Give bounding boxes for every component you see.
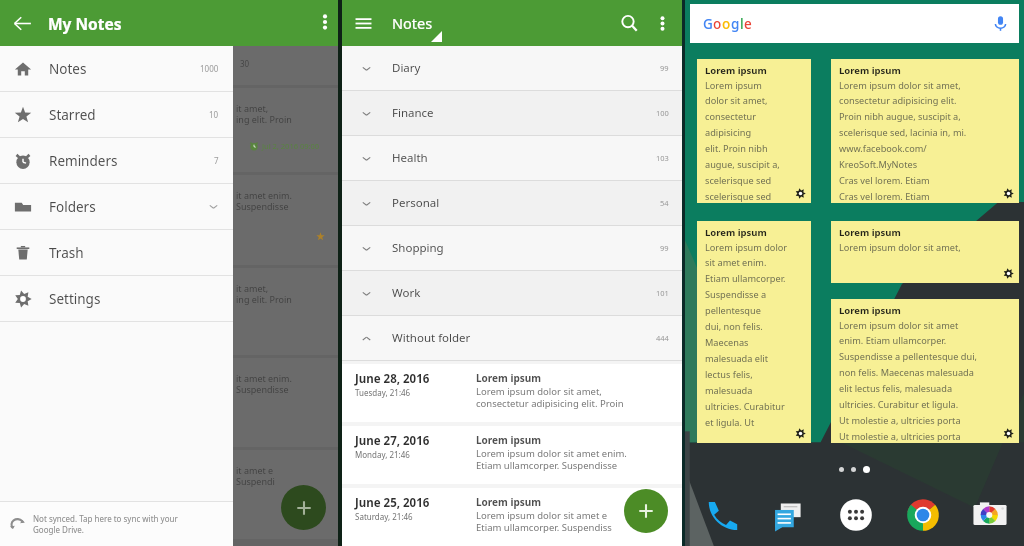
staticText: it amet, ing elit. Proin [236, 282, 292, 306]
staticText: Health [392, 150, 428, 166]
staticText: G [703, 15, 713, 33]
button[interactable]: Note options [795, 428, 806, 439]
staticText: Folders [49, 198, 96, 216]
staticText: Trash [49, 244, 84, 262]
staticText: 103 [656, 153, 669, 163]
staticText: Settings [49, 290, 101, 308]
staticText: June 25, 2016 [355, 495, 430, 511]
button[interactable]: Not synced. Tap here to sync with your G… [0, 502, 233, 546]
staticText: Lorem ipsum [839, 64, 901, 77]
staticText: l [740, 15, 744, 33]
staticText: 101 [656, 288, 669, 298]
staticText: Starred [49, 106, 96, 124]
button[interactable]: Lorem ipsum [831, 299, 1019, 443]
staticText: Lorem ipsum [476, 433, 542, 447]
staticText: Monday, 21:46 [355, 449, 410, 460]
staticText: 100 [656, 108, 669, 118]
button[interactable]: Notes [0, 46, 233, 91]
staticText: Lorem ipsum dolor sit amet, [839, 241, 961, 254]
staticText: Not synced. Tap here to sync with your G… [33, 513, 178, 535]
staticText: 30 [240, 58, 250, 69]
staticText: o [722, 15, 731, 33]
staticText: 7 [214, 155, 219, 166]
staticText: June 27, 2016 [355, 433, 430, 449]
staticText: Lorem ipsum dolor sit amet e Etiam ullam… [476, 509, 612, 534]
staticText: Work [392, 285, 421, 301]
button[interactable]: Chrome [902, 494, 944, 536]
staticText: Reminders [49, 152, 118, 170]
staticText: Lorem ipsum dolor sit amet enim. Etiam u… [839, 319, 977, 443]
button[interactable]: Search [620, 14, 639, 33]
button[interactable]: Without folder [342, 316, 682, 360]
button[interactable]: Back [0, 0, 233, 46]
staticText: Without folder [392, 330, 471, 346]
staticText: My Notes [48, 13, 122, 34]
button[interactable]: Health [342, 136, 682, 180]
staticText: Lorem ipsum [476, 495, 542, 509]
button[interactable]: Lorem ipsum [697, 59, 811, 203]
staticText: Notes [392, 13, 433, 33]
button[interactable]: Messages [767, 494, 809, 536]
button[interactable]: Phone [700, 494, 742, 536]
staticText: 99 [660, 63, 669, 73]
staticText: 10 [209, 109, 219, 120]
button[interactable]: Open navigation drawer [354, 14, 373, 33]
staticText: Personal [392, 195, 440, 211]
button[interactable]: Finance [342, 91, 682, 135]
staticText: Saturday, 21:46 [355, 511, 413, 522]
staticText: Lorem ipsum [705, 64, 767, 77]
staticText: it amet enim. Suspendisse [236, 189, 292, 213]
button[interactable]: Diary [342, 46, 682, 90]
staticText: Tuesday, 21:46 [355, 387, 411, 398]
staticText: Shopping [392, 240, 444, 256]
staticText: June 28, 2016 [355, 371, 430, 387]
button[interactable]: More options [315, 12, 335, 32]
staticText: Diary [392, 60, 421, 76]
button[interactable]: More options [653, 14, 672, 33]
staticText: e [744, 15, 752, 33]
button[interactable]: All apps [835, 494, 877, 536]
button[interactable]: Lorem ipsum [697, 221, 811, 443]
button[interactable]: Lorem ipsum [831, 59, 1019, 203]
button[interactable]: Folders [0, 184, 233, 229]
button[interactable]: Camera [969, 494, 1011, 536]
button[interactable]: Voice search [992, 15, 1009, 32]
button[interactable]: Reminders [0, 138, 233, 183]
button[interactable]: Starred [0, 92, 233, 137]
button[interactable]: G [690, 4, 1019, 43]
staticText: 444 [656, 333, 669, 343]
button[interactable]: Lorem ipsum [831, 221, 1019, 283]
staticText: Lorem ipsum dolor sit amet enim. Etiam u… [476, 447, 627, 472]
button[interactable]: Note options [795, 188, 806, 199]
button[interactable]: Settings [0, 276, 233, 321]
staticText: it amet enim. Suspendisse [236, 372, 292, 396]
button[interactable]: June 28, 2016 [342, 364, 682, 422]
button[interactable]: Shopping [342, 226, 682, 270]
staticText: o [713, 15, 722, 33]
button[interactable]: New note [624, 489, 668, 533]
staticText: Lorem ipsum dolor sit amet, consectetur … [476, 385, 624, 410]
staticText: Lorem ipsum dolor sit amet, consectetur … [839, 79, 967, 203]
staticText: Lorem ipsum [476, 371, 542, 385]
staticText: Lorem ipsum [705, 226, 767, 239]
staticText: Lorem ipsum dolor sit amet, consectetur … [705, 79, 780, 203]
button[interactable]: June 27, 2016 [342, 426, 682, 484]
staticText: it amet e Suspendi [236, 464, 275, 488]
staticText: 99 [660, 243, 669, 253]
button[interactable]: New note [281, 485, 326, 530]
staticText: Jul 2, 2016 09:00 [262, 141, 320, 151]
button[interactable]: Note options [1003, 428, 1014, 439]
button[interactable]: Personal [342, 181, 682, 225]
button[interactable]: Work [342, 271, 682, 315]
button[interactable]: Note options [1003, 188, 1014, 199]
staticText: Notes [49, 60, 87, 78]
button[interactable]: Trash [0, 230, 233, 275]
staticText: Lorem ipsum [839, 304, 901, 317]
other: Back [12, 13, 33, 34]
button[interactable]: Note options [1003, 268, 1014, 279]
button[interactable]: June 25, 2016 [342, 488, 682, 546]
staticText: 54 [660, 198, 669, 208]
staticText: 1000 [200, 63, 219, 74]
staticText: it amet, ing elit. Proin [236, 102, 292, 126]
staticText: Lorem ipsum dolor sit amet enim. Etiam u… [705, 241, 788, 429]
